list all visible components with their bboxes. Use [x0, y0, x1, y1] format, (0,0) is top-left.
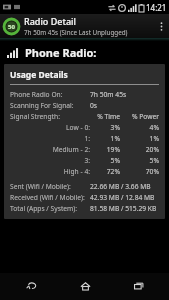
staticText: 22.66 MB / 3.66 MB	[90, 182, 159, 191]
staticText: 7h 50m 45s	[90, 90, 159, 99]
staticText: 14:21	[146, 2, 167, 13]
staticText: 3%	[90, 123, 120, 132]
staticText: Radio Detail	[24, 15, 76, 27]
staticText: 0s	[90, 101, 159, 110]
staticText: Usage Details	[10, 69, 68, 81]
button[interactable]: Recent apps	[115, 273, 161, 300]
button[interactable]: Usage Details	[4, 64, 165, 219]
staticText: 7h 50m 45s (Since Last Unplugged)	[24, 28, 128, 37]
staticText: 72%	[90, 167, 120, 176]
staticText: Received (Wifi / Mobile):	[10, 193, 90, 202]
staticText: Total (Apps / System):	[10, 204, 90, 213]
staticText: Scanning For Signal:	[10, 101, 90, 110]
button[interactable]: App icon	[3, 18, 20, 35]
staticText: Low - 0:	[10, 123, 90, 132]
staticText: 20%	[120, 145, 159, 154]
button[interactable]: Phone Radio:	[0, 41, 169, 64]
staticText: High - 4:	[10, 167, 90, 176]
staticText: 1%	[90, 134, 120, 143]
staticText: 81.58 MB / 515.29 KB	[90, 204, 159, 213]
staticText: 4%	[120, 123, 159, 132]
staticText: 42.93 MB / 12.84 MB	[90, 193, 159, 202]
staticText: % Power	[120, 112, 159, 121]
staticText: Medium - 2:	[10, 145, 90, 154]
staticText: % Time	[90, 112, 120, 121]
staticText: 1%	[120, 134, 159, 143]
staticText: 50	[8, 23, 15, 31]
staticText: Phone Radio On:	[10, 90, 90, 99]
staticText: Phone Radio:	[25, 45, 97, 60]
staticText: Sent (Wifi / Mobile):	[10, 182, 90, 191]
staticText: 3:	[10, 156, 90, 165]
staticText: 19%	[90, 145, 120, 154]
button[interactable]: More options	[155, 14, 168, 38]
staticText: 5%	[120, 156, 159, 165]
button[interactable]: Home	[62, 273, 108, 300]
staticText: Signal Strength:	[10, 112, 90, 121]
button[interactable]: Back	[8, 273, 54, 300]
staticText: 1:	[10, 134, 90, 143]
staticText: 70%	[120, 167, 159, 176]
staticText: 5%	[90, 156, 120, 165]
